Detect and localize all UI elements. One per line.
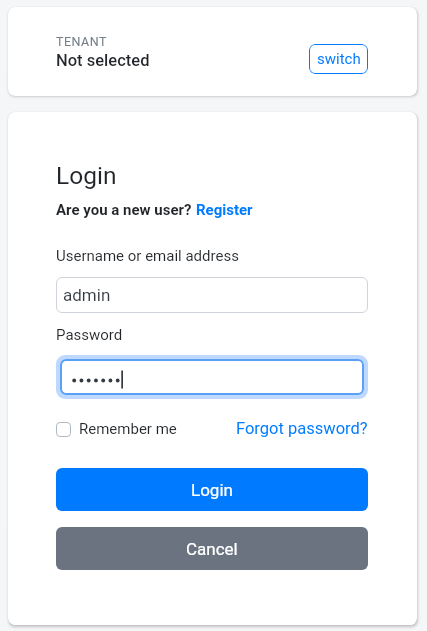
staticText: Are you a new user? [56, 201, 196, 219]
staticText: Password [56, 326, 123, 344]
staticText: switch [317, 50, 361, 68]
staticText: Not selected [56, 51, 150, 70]
staticText: Remember me [79, 420, 177, 438]
staticText: Cancel [186, 539, 238, 559]
button[interactable]: Remember me [56, 420, 177, 438]
staticText: Login [56, 161, 117, 190]
staticText: Login [191, 480, 233, 500]
button[interactable]: Cancel [56, 527, 368, 570]
button[interactable]: Forgot password? [236, 419, 368, 438]
button[interactable]: Register [196, 201, 253, 219]
button[interactable]: switch [309, 44, 368, 74]
staticText: TENANT [56, 34, 107, 49]
button[interactable]: Login [56, 468, 368, 511]
staticText: admin [63, 285, 111, 305]
staticText: Username or email address [56, 247, 239, 265]
